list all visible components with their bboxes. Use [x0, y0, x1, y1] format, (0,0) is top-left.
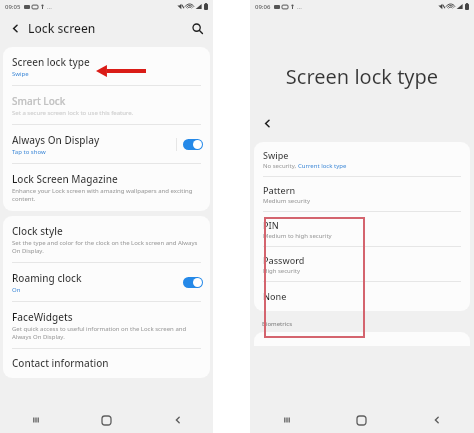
- button[interactable]: Always On Display: [3, 125, 210, 163]
- button[interactable]: Back: [260, 116, 274, 130]
- staticText: On: [12, 286, 21, 294]
- button[interactable]: Roaming clock: [3, 263, 210, 301]
- button[interactable]: Back: [142, 407, 213, 433]
- staticText: ...: [47, 3, 52, 11]
- staticText: Screen lock type: [264, 63, 460, 90]
- staticText: Biometrics: [262, 320, 293, 328]
- button[interactable]: FaceWidgets: [3, 302, 210, 348]
- staticText: Set the type and color for the clock on …: [12, 239, 198, 255]
- staticText: Password: [263, 254, 305, 266]
- staticText: Medium to high security: [263, 232, 332, 240]
- button[interactable]: Back: [399, 407, 474, 433]
- button[interactable]: Recent apps: [250, 407, 324, 433]
- button[interactable]: Back: [8, 21, 22, 35]
- button[interactable]: Screen lock type: [3, 47, 210, 85]
- staticText: None: [263, 290, 287, 302]
- staticText: Tap to show: [12, 148, 46, 156]
- staticText: Set a secure screen lock to use this fea…: [12, 109, 134, 117]
- button[interactable]: Clock style: [3, 216, 210, 262]
- button[interactable]: Home: [324, 407, 399, 433]
- button[interactable]: Toggle: [183, 139, 203, 150]
- staticText: Screen lock type: [12, 55, 90, 69]
- staticText: PIN: [263, 219, 279, 231]
- staticText: ...: [297, 3, 302, 11]
- staticText: Lock Screen Magazine: [12, 172, 118, 186]
- button[interactable]: None: [254, 282, 470, 311]
- staticText: Always On Display: [12, 133, 100, 147]
- staticText: High security: [263, 267, 301, 275]
- staticText: Swipe: [12, 70, 29, 78]
- staticText: Swipe: [263, 149, 289, 161]
- staticText: Roaming clock: [12, 271, 82, 285]
- button[interactable]: Home: [71, 407, 142, 433]
- staticText: Lock screen: [28, 20, 96, 36]
- staticText: 09:05: [5, 3, 21, 11]
- staticText: Clock style: [12, 224, 63, 238]
- button[interactable]: Contact information: [3, 349, 210, 378]
- button[interactable]: Toggle: [183, 277, 203, 288]
- button[interactable]: PIN: [254, 212, 470, 246]
- staticText: No security,: [263, 162, 298, 170]
- button[interactable]: Password: [254, 247, 470, 281]
- staticText: Smart Lock: [12, 94, 66, 108]
- staticText: 09:06: [255, 3, 271, 11]
- staticText: Contact information: [12, 356, 109, 370]
- staticText: Pattern: [263, 184, 296, 196]
- button[interactable]: Pattern: [254, 177, 470, 211]
- staticText: Get quick access to useful information o…: [12, 325, 198, 341]
- button[interactable]: Swipe: [254, 142, 470, 176]
- button[interactable]: Smart Lock: [3, 86, 210, 124]
- staticText: FaceWidgets: [12, 310, 73, 324]
- staticText: Enhance your Lock screen with amazing wa…: [12, 187, 198, 203]
- button[interactable]: Lock Screen Magazine: [3, 164, 210, 211]
- button[interactable]: Recent apps: [0, 407, 71, 433]
- staticText: Current lock type: [298, 162, 347, 170]
- staticText: Medium security: [263, 197, 311, 205]
- button[interactable]: Search: [189, 20, 205, 36]
